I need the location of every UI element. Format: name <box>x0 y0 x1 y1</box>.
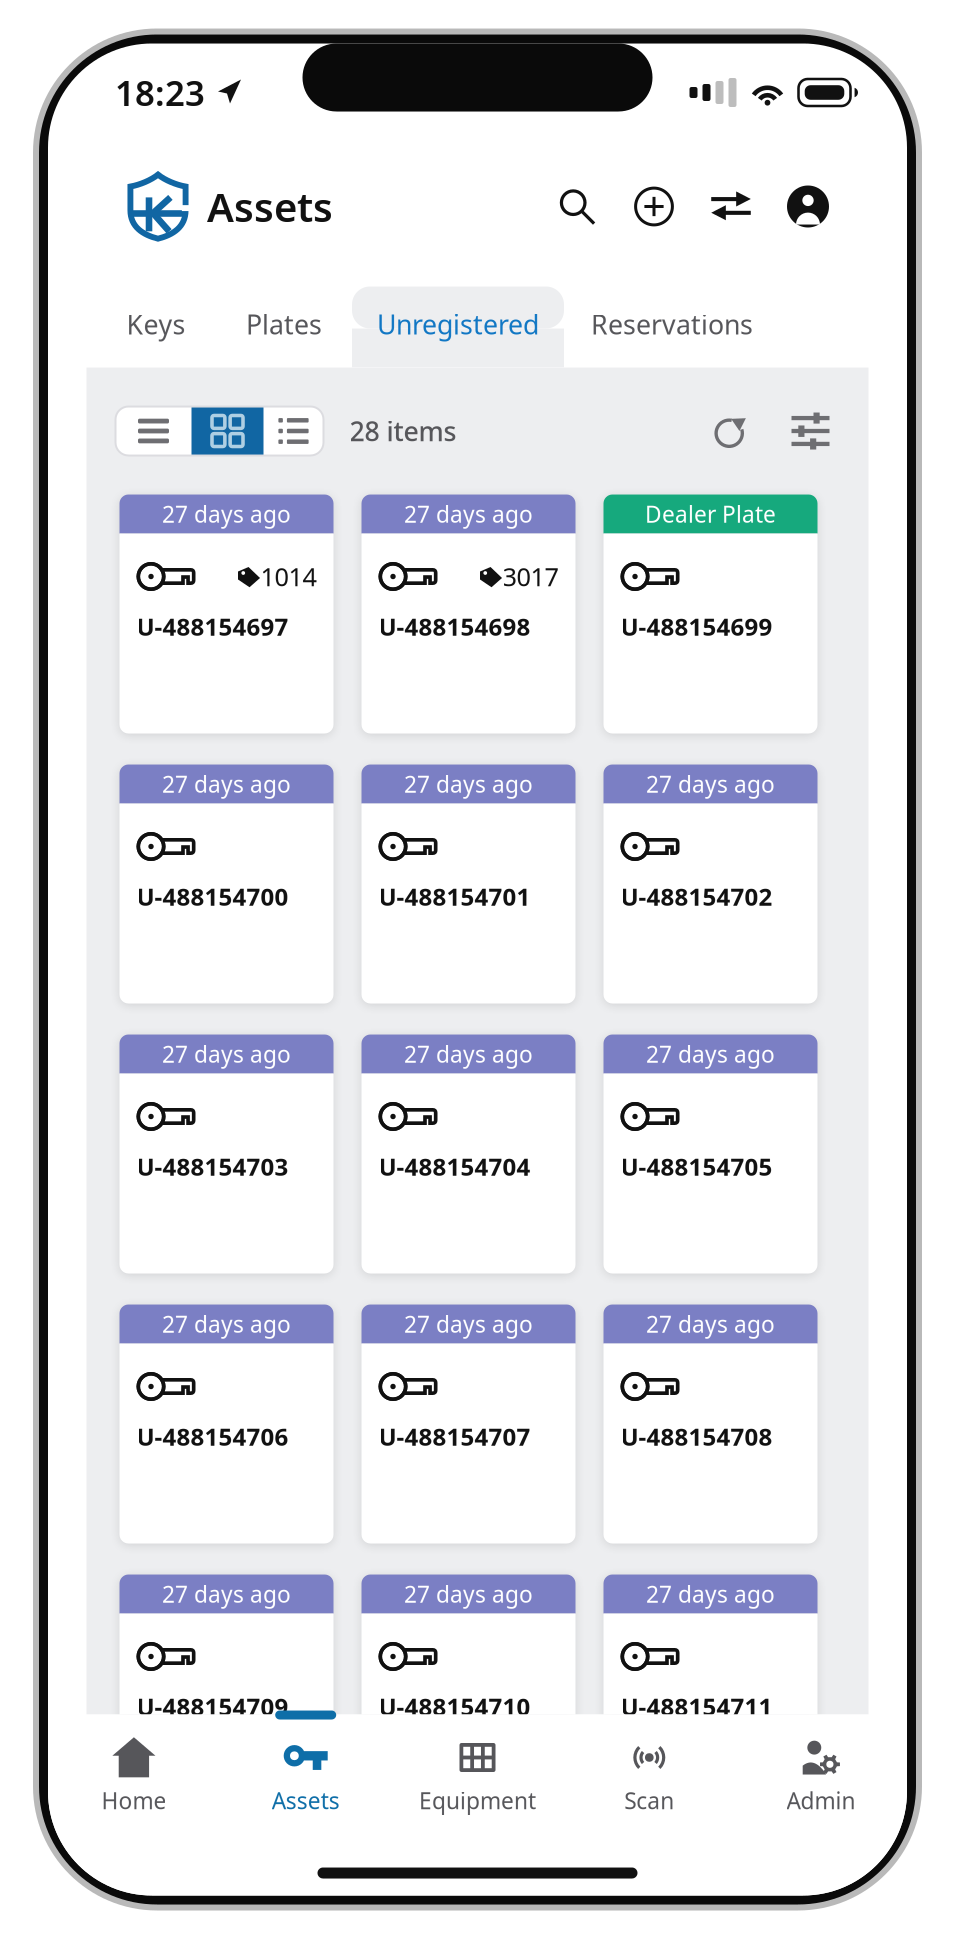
button[interactable]: List view <box>115 406 191 455</box>
staticText: 27 days ago <box>162 1039 291 1069</box>
staticText: U-488154703 <box>136 1150 288 1182</box>
button[interactable]: Filter <box>755 406 835 456</box>
staticText: U-488154698 <box>378 610 530 642</box>
button[interactable]: 27 days ago <box>603 764 817 1003</box>
staticText: 18:23 <box>115 69 205 115</box>
button[interactable]: Reservations <box>564 271 780 367</box>
staticText: 27 days ago <box>404 1309 533 1339</box>
button[interactable]: Home <box>48 1714 220 1824</box>
staticText: U-488154711 <box>620 1690 772 1722</box>
staticText: 1014 <box>260 560 316 593</box>
staticText: U-488154709 <box>136 1690 288 1722</box>
staticText: 27 days ago <box>404 769 533 799</box>
button[interactable]: Equipment <box>392 1714 563 1824</box>
staticText: U-488154699 <box>620 610 772 642</box>
button[interactable]: Add asset <box>607 176 684 236</box>
button[interactable]: Refresh <box>705 406 755 456</box>
staticText: 27 days ago <box>646 769 775 799</box>
button[interactable]: 27 days ago <box>361 1304 575 1543</box>
button[interactable]: 27 days ago <box>361 1034 575 1273</box>
staticText: U-488154710 <box>378 1690 530 1722</box>
staticText: 28 items <box>349 413 456 449</box>
staticText: Plates <box>246 306 322 342</box>
staticText: Dealer Plate <box>645 499 776 529</box>
button[interactable]: Assets <box>220 1714 392 1824</box>
button[interactable]: 27 days ago <box>361 1574 575 1813</box>
button[interactable]: Keys <box>96 271 216 367</box>
staticText: 27 days ago <box>646 1579 775 1609</box>
staticText: Admin <box>787 1785 856 1816</box>
button[interactable]: Search <box>547 176 607 236</box>
staticText: 27 days ago <box>646 1309 775 1339</box>
staticText: 3017 <box>502 560 558 593</box>
button[interactable]: 27 days ago <box>361 764 575 1003</box>
button[interactable]: Account <box>761 176 838 236</box>
button[interactable]: 27 days ago <box>119 494 333 733</box>
button[interactable]: Scan <box>563 1714 735 1824</box>
staticText: 27 days ago <box>162 1579 291 1609</box>
button[interactable]: 27 days ago <box>603 1034 817 1273</box>
button[interactable]: Admin <box>735 1714 907 1824</box>
staticText: Keys <box>126 306 185 342</box>
staticText: U-488154706 <box>136 1420 288 1452</box>
staticText: 27 days ago <box>162 769 291 799</box>
button[interactable]: 27 days ago <box>119 764 333 1003</box>
button[interactable]: 27 days ago <box>119 1034 333 1273</box>
staticText: U-488154707 <box>378 1420 530 1452</box>
button[interactable]: 27 days ago <box>603 1574 817 1813</box>
staticText: 27 days ago <box>162 499 291 529</box>
button[interactable]: Compact list view <box>263 406 323 455</box>
staticText: U-488154701 <box>378 880 530 912</box>
button[interactable]: 27 days ago <box>603 1304 817 1543</box>
button[interactable]: Dealer Plate <box>603 494 817 733</box>
staticText: 27 days ago <box>646 1039 775 1069</box>
staticText: Scan <box>624 1785 674 1816</box>
staticText: U-488154705 <box>620 1150 772 1182</box>
button[interactable]: Transfer <box>684 176 761 236</box>
staticText: U-488154697 <box>136 610 288 642</box>
staticText: Unregistered <box>377 306 539 342</box>
staticText: U-488154704 <box>378 1150 530 1182</box>
staticText: Home <box>101 1785 166 1816</box>
button[interactable]: Plates <box>216 271 352 367</box>
staticText: 27 days ago <box>404 1579 533 1609</box>
staticText: 27 days ago <box>162 1309 291 1339</box>
button[interactable]: 27 days ago <box>119 1574 333 1813</box>
staticText: 27 days ago <box>404 499 533 529</box>
staticText: U-488154702 <box>620 880 772 912</box>
staticText: Assets <box>207 180 333 233</box>
button[interactable]: Grid view <box>191 406 263 455</box>
staticText: Equipment <box>419 1785 536 1816</box>
staticText: U-488154700 <box>136 880 288 912</box>
staticText: Assets <box>272 1785 340 1816</box>
button[interactable]: 27 days ago <box>119 1304 333 1543</box>
staticText: U-488154708 <box>620 1420 772 1452</box>
staticText: Reservations <box>591 306 753 342</box>
staticText: 27 days ago <box>404 1039 533 1069</box>
button[interactable]: Unregistered <box>352 271 564 367</box>
button[interactable]: 27 days ago <box>361 494 575 733</box>
